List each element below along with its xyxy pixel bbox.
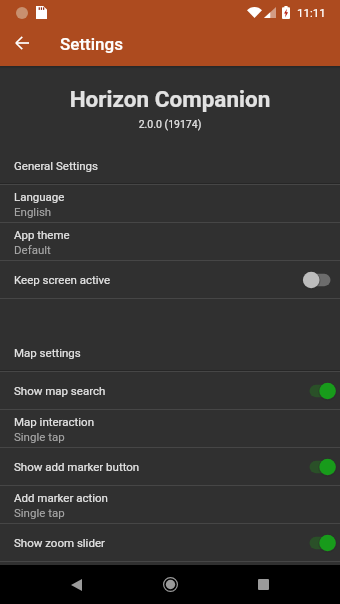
staticText: Show map search	[14, 384, 302, 397]
button[interactable]: Keep screen active	[0, 261, 340, 298]
staticText: Keep screen active	[14, 273, 302, 286]
staticText: Horizon Companion	[0, 86, 340, 112]
button[interactable]: Show add marker button	[0, 448, 340, 485]
staticText: App theme	[14, 228, 70, 241]
button[interactable]: Add marker action	[0, 486, 340, 523]
button[interactable]: Show zoom slider	[0, 524, 340, 561]
staticText: General Settings	[14, 159, 98, 172]
staticText: Settings	[60, 34, 123, 54]
staticText: Map settings	[14, 346, 81, 359]
staticText: 2.0.0 (19174)	[0, 118, 340, 130]
button[interactable]: Language	[0, 185, 340, 222]
staticText: Single tap	[14, 506, 65, 519]
button[interactable]: Back	[53, 565, 100, 604]
staticText: Add marker action	[14, 491, 108, 504]
button[interactable]: Show map search	[0, 372, 340, 409]
button[interactable]: Home	[147, 565, 194, 604]
staticText: Show zoom slider	[14, 536, 302, 549]
staticText: English	[14, 205, 52, 218]
staticText: Show add marker button	[14, 460, 302, 473]
staticText: Map interaction	[14, 415, 95, 428]
button[interactable]: App theme	[0, 223, 340, 260]
staticText: 11:11	[297, 6, 326, 19]
staticText: Language	[14, 190, 65, 203]
button[interactable]: Map interaction	[0, 410, 340, 447]
staticText: Single tap	[14, 430, 65, 443]
button[interactable]: Navigate up	[4, 25, 40, 61]
staticText: Default	[14, 243, 51, 256]
button[interactable]: Recent apps	[240, 565, 287, 604]
